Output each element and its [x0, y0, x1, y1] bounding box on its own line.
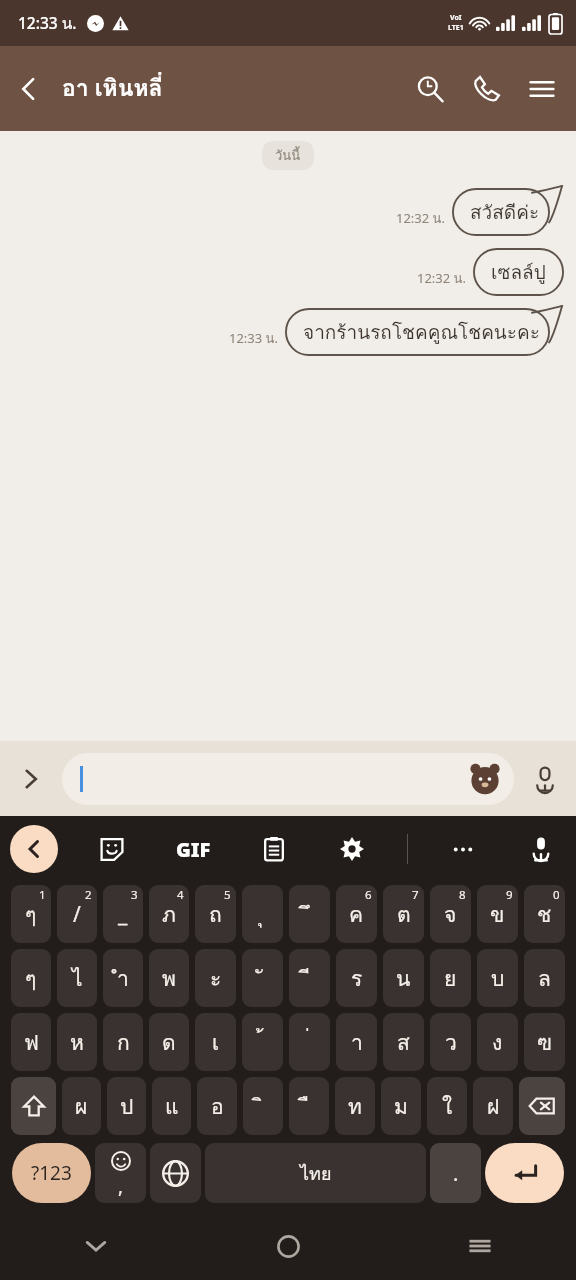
button[interactable]: ว [430, 1013, 471, 1071]
staticText: ข [490, 898, 505, 931]
staticText: ภ [162, 898, 176, 931]
button[interactable]: Back [0, 60, 58, 118]
button[interactable]: ึ [289, 885, 330, 943]
button[interactable]: . [430, 1143, 481, 1203]
staticText: ส [397, 1026, 410, 1059]
button[interactable]: Voice message [514, 748, 576, 810]
button[interactable]: ล [524, 949, 565, 1007]
button[interactable]: ื [289, 1077, 329, 1135]
button[interactable]: น [383, 949, 424, 1007]
button[interactable]: Settings [329, 826, 375, 872]
button[interactable]: ่ [289, 1013, 330, 1071]
button[interactable]: Shift [11, 1077, 56, 1135]
staticText: LTE1 [448, 23, 464, 33]
button[interactable]: Menu [514, 61, 570, 117]
button[interactable]: ฟ [11, 1013, 51, 1071]
button[interactable]: Stickers [468, 762, 502, 796]
button[interactable]: ส [383, 1013, 424, 1071]
button[interactable]: ร [336, 949, 377, 1007]
button[interactable]: พ [149, 949, 189, 1007]
button[interactable]: Backspace [519, 1077, 565, 1135]
button[interactable]: ี [289, 949, 330, 1007]
button[interactable]: แ [152, 1077, 191, 1135]
button[interactable]: 8 [430, 885, 471, 943]
staticText: วันนี้ [275, 145, 301, 166]
button[interactable]: Search history [402, 61, 458, 117]
staticText: เ [212, 1026, 220, 1059]
button[interactable]: ง [477, 1013, 518, 1071]
button[interactable]: เซลล์ปู [473, 248, 564, 296]
button[interactable]: ไทย [205, 1143, 426, 1203]
button[interactable]: จากร้านรถโชคคูณโชคนะคะ [285, 308, 564, 356]
button[interactable]: ก [103, 1013, 143, 1071]
button[interactable]: สวัสดีค่ะ [452, 188, 564, 236]
staticText: ก [117, 1026, 130, 1059]
button[interactable]: 7 [383, 885, 424, 943]
button[interactable]: ?123 [12, 1143, 91, 1203]
button[interactable]: Home [192, 1212, 384, 1280]
button[interactable]: ้ [242, 1013, 283, 1071]
button[interactable]: Stickers [89, 826, 135, 872]
button[interactable]: ด [149, 1013, 189, 1071]
button[interactable]: 4 [149, 885, 189, 943]
button[interactable]: 5 [195, 885, 236, 943]
button[interactable]: ๆ [11, 949, 51, 1007]
button[interactable]: 6 [336, 885, 377, 943]
button[interactable]: More [440, 826, 486, 872]
staticText: ผ [75, 1090, 88, 1123]
staticText: ถ [209, 898, 222, 931]
button[interactable]: ะ [195, 949, 236, 1007]
button[interactable]: ิ [243, 1077, 283, 1135]
button[interactable]: ย [430, 949, 471, 1007]
button[interactable]: Call [458, 61, 514, 117]
staticText: 0 [553, 887, 560, 903]
button[interactable]: Enter [485, 1143, 564, 1203]
button[interactable]: ท [335, 1077, 375, 1135]
staticText: ๆ [25, 962, 37, 995]
staticText: สวัสดีค่ะ [470, 197, 540, 227]
button[interactable]: Clipboard [251, 826, 297, 872]
button[interactable]: 9 [477, 885, 518, 943]
staticText: 12:33 น. [229, 328, 278, 349]
button[interactable]: Voice input [518, 826, 564, 872]
button[interactable]: Emoji and comma [95, 1143, 146, 1203]
staticText: จ [444, 898, 457, 931]
button[interactable]: ฝ [473, 1077, 513, 1135]
button[interactable]: More options [0, 748, 62, 810]
button[interactable]: เ [195, 1013, 236, 1071]
button[interactable]: 1 [11, 885, 51, 943]
button[interactable]: ำ [103, 949, 143, 1007]
button[interactable]: GIF [167, 823, 219, 875]
button[interactable]: Change language [150, 1143, 201, 1203]
button[interactable]: 3 [103, 885, 143, 943]
button[interactable]: ฃ [524, 1013, 565, 1071]
staticText: / [73, 900, 81, 929]
staticText: 6 [365, 887, 372, 903]
staticText: ฃ [537, 1026, 552, 1059]
staticText: ะ [210, 962, 222, 995]
staticText: ค [349, 898, 364, 931]
button[interactable]: ห [57, 1013, 97, 1071]
button[interactable]: 0 [524, 885, 565, 943]
button[interactable]: ุ [242, 885, 283, 943]
button[interactable]: อ [197, 1077, 237, 1135]
button[interactable]: 2 [57, 885, 97, 943]
staticText: ๆ [25, 898, 37, 931]
button[interactable]: Stickers [62, 753, 514, 805]
button[interactable]: ใ [427, 1077, 467, 1135]
button[interactable]: ป [107, 1077, 146, 1135]
staticText: 9 [506, 887, 513, 903]
button[interactable]: Collapse toolbar [10, 825, 58, 873]
button[interactable]: า [336, 1013, 377, 1071]
button[interactable]: บ [477, 949, 518, 1007]
button[interactable]: ไ [57, 949, 97, 1007]
button[interactable]: Recent apps [384, 1212, 576, 1280]
button[interactable]: ั [242, 949, 283, 1007]
button[interactable]: Hide keyboard [0, 1212, 192, 1280]
staticText: GIF [176, 836, 211, 863]
staticText: , [118, 1173, 124, 1199]
staticText: _ [118, 900, 128, 929]
staticText: แ [165, 1090, 179, 1123]
button[interactable]: ม [381, 1077, 421, 1135]
button[interactable]: ผ [62, 1077, 101, 1135]
